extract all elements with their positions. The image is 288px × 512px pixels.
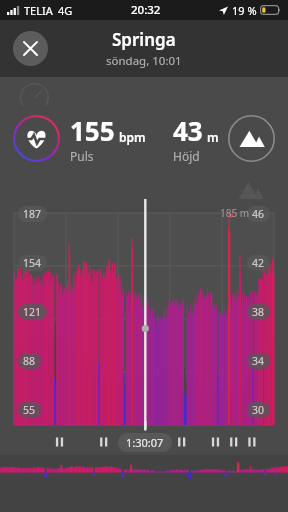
staticText: m [207, 129, 219, 145]
staticText: 19 % [232, 3, 257, 18]
staticText: 34 [252, 354, 265, 368]
staticText: 42 [252, 256, 265, 270]
staticText: 43 [173, 113, 203, 148]
staticText: Puls [70, 148, 94, 164]
staticText: Höjd [173, 148, 200, 164]
button[interactable]: Höjd [228, 115, 275, 162]
staticText: 30 [252, 403, 265, 417]
staticText: 4G [58, 3, 73, 18]
button[interactable]: Stäng [13, 31, 48, 66]
staticText: söndag, 10:01 [106, 53, 182, 69]
staticText: 46 [252, 207, 265, 221]
staticText: 88 [23, 354, 36, 368]
staticText: Springa [112, 28, 176, 51]
staticText: 38 [252, 305, 265, 319]
staticText: TELIA [24, 3, 53, 18]
button[interactable]: Puls [13, 115, 60, 162]
staticText: 187 [23, 207, 42, 221]
staticText: 121 [23, 305, 42, 319]
button[interactable]: 1:30:07 [126, 435, 164, 450]
staticText: bpm [119, 129, 146, 145]
staticText: 20:32 [131, 2, 161, 18]
staticText: 55 [23, 403, 36, 417]
staticText: 155 [70, 113, 115, 148]
staticText: 1:30:07 [126, 435, 164, 450]
staticText: 154 [23, 256, 42, 270]
staticText: 185 m [220, 206, 250, 220]
